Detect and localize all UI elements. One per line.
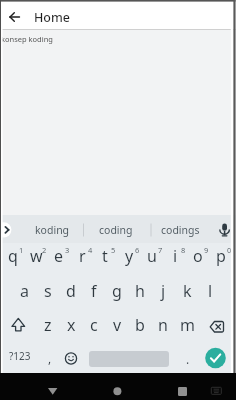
staticText: a [20, 280, 29, 302]
staticText: o [193, 245, 203, 267]
staticText: c [90, 314, 98, 336]
staticText: konsep koding [1, 34, 53, 44]
staticText: k [183, 280, 192, 302]
staticText: d [66, 280, 76, 302]
staticText: codings [161, 223, 200, 237]
staticText: 3 [65, 245, 70, 255]
staticText: y [125, 245, 134, 267]
staticText: koding [35, 223, 70, 237]
staticText: n [158, 314, 168, 336]
staticText: f [91, 280, 97, 302]
staticText: 7 [158, 245, 163, 255]
staticText: 2 [42, 245, 47, 255]
staticText: Home [34, 9, 71, 26]
staticText: u [147, 245, 157, 267]
staticText: h [135, 280, 145, 302]
staticText: , [48, 350, 52, 366]
staticText: b [135, 314, 145, 336]
staticText: 1 [19, 245, 24, 255]
staticText: e [54, 245, 64, 267]
staticText: v [113, 314, 122, 336]
staticText: s [44, 280, 52, 302]
staticText: g [112, 280, 122, 302]
staticText: 9 [204, 245, 209, 255]
staticText: w [30, 245, 43, 267]
staticText: l [208, 280, 213, 302]
staticText: i [173, 245, 178, 267]
staticText: j [161, 280, 166, 302]
staticText: 0 [227, 245, 232, 255]
staticText: 4 [88, 245, 93, 255]
staticText: 8 [181, 245, 186, 255]
staticText: m [180, 314, 195, 336]
staticText: t [102, 245, 108, 267]
staticText: . [186, 351, 190, 367]
staticText: ?123 [9, 349, 31, 363]
staticText: 6 [135, 245, 140, 255]
staticText: z [44, 314, 52, 336]
staticText: p [216, 245, 226, 267]
staticText: x [67, 314, 76, 336]
staticText: q [8, 245, 18, 267]
staticText: 5 [111, 245, 116, 255]
staticText: r [79, 245, 86, 267]
staticText: coding [99, 223, 133, 237]
